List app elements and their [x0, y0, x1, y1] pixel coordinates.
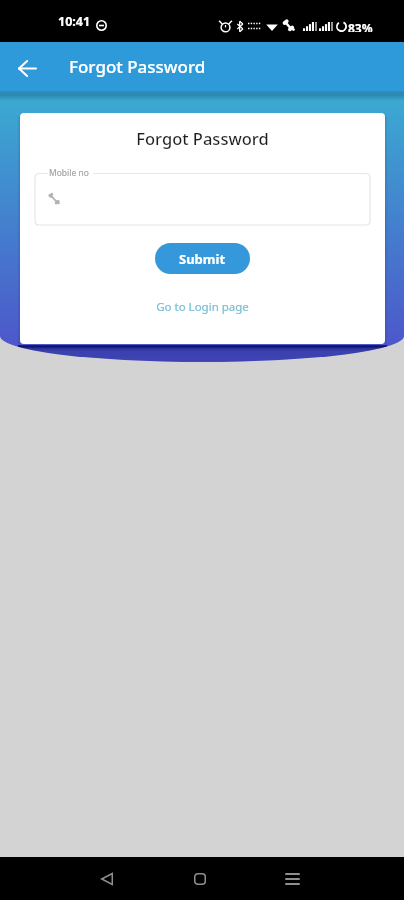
- staticText: Forgot Password: [69, 55, 206, 78]
- staticText: Mobile no: [49, 167, 89, 179]
- button[interactable]: Back: [83, 857, 130, 900]
- staticText: Forgot Password: [20, 127, 385, 149]
- staticText: 10:41: [58, 13, 91, 30]
- button[interactable]: Home: [176, 857, 223, 900]
- button[interactable]: Back: [4, 44, 51, 93]
- button[interactable]: Recent apps: [269, 857, 316, 900]
- staticText: Submit: [179, 250, 226, 268]
- staticText: 83%: [348, 20, 373, 32]
- button[interactable]: Go to Login page: [20, 299, 385, 315]
- button[interactable]: Submit: [155, 243, 250, 274]
